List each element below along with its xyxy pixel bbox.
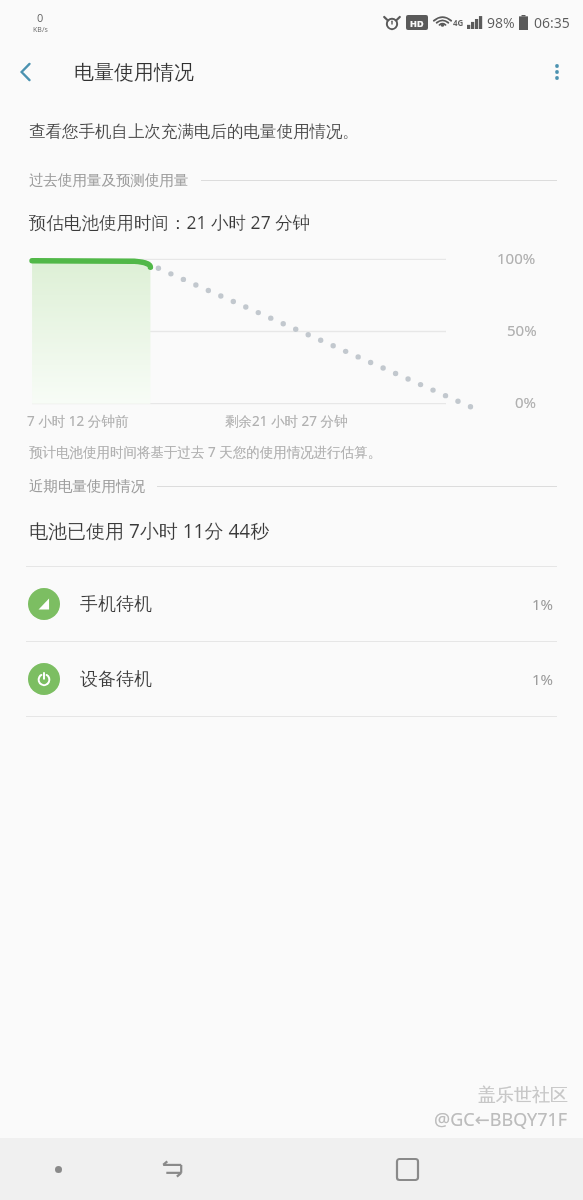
staticText: 近期电量使用情况 (29, 477, 145, 495)
button[interactable]: 手机待机 (0, 567, 583, 641)
button[interactable]: Back (349, 1138, 466, 1200)
staticText: 1% (532, 669, 554, 689)
button[interactable]: More options (531, 46, 583, 98)
staticText: 电池已使用 7小时 11分 44秒 (29, 518, 270, 544)
staticText: 50% (507, 320, 537, 340)
button[interactable]: 设备待机 (0, 642, 583, 716)
button[interactable]: Back (0, 46, 52, 98)
button[interactable]: Notifications (0, 1138, 116, 1200)
staticText: 0 (37, 10, 44, 25)
staticText: 100% (497, 248, 536, 268)
staticText: 预估电池使用时间：21 小时 27 分钟 (29, 210, 311, 234)
staticText: 06:35 (534, 13, 570, 32)
staticText: 设备待机 (80, 668, 152, 691)
staticText: 查看您手机自上次充满电后的电量使用情况。 (29, 121, 359, 142)
staticText: @GC←BBQY71F (434, 1107, 568, 1132)
staticText: 过去使用量及预测使用量 (29, 171, 189, 189)
staticText: 0% (515, 392, 537, 412)
staticText: 1% (532, 594, 554, 614)
staticText: 盖乐世社区 (478, 1084, 568, 1107)
staticText: 4G (453, 17, 464, 28)
staticText: 电量使用情况 (74, 60, 194, 85)
staticText: 7 小时 12 分钟前 (27, 412, 129, 430)
staticText: KB/s (33, 25, 48, 35)
button[interactable]: Recents (116, 1138, 232, 1200)
staticText: 剩余21 小时 27 分钟 (225, 412, 348, 430)
staticText: 手机待机 (80, 593, 152, 616)
staticText: 预计电池使用时间将基于过去 7 天您的使用情况进行估算。 (29, 443, 382, 461)
staticText: 98% (487, 13, 515, 32)
staticText: HD (410, 17, 424, 29)
